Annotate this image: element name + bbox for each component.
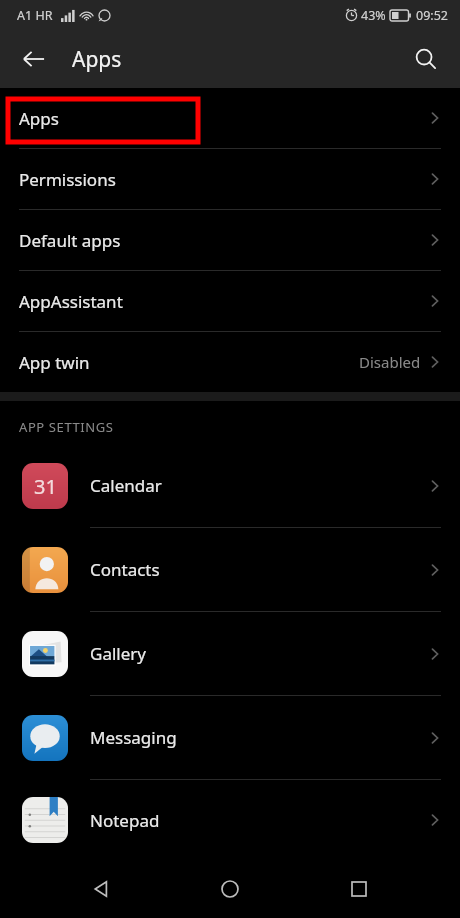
staticText: Permissions [19, 168, 116, 191]
button[interactable]: Gallery [0, 612, 460, 695]
staticText: Messaging [90, 726, 177, 749]
button[interactable]: Search [404, 37, 448, 81]
staticText: Notepad [90, 809, 160, 832]
staticText: Calendar [90, 474, 162, 497]
staticText: Contacts [90, 558, 160, 581]
button[interactable]: 31 [0, 444, 460, 527]
staticText: Default apps [19, 229, 121, 252]
button[interactable]: Contacts [0, 528, 460, 611]
staticText: App twin [19, 351, 90, 374]
staticText: Gallery [90, 642, 146, 665]
button[interactable]: AppAssistant [0, 271, 460, 331]
staticText: APP SETTINGS [19, 418, 114, 436]
button[interactable]: Recent apps [331, 861, 387, 917]
staticText: Apps [19, 107, 59, 130]
button[interactable]: Back [12, 37, 56, 81]
button[interactable]: Back [73, 861, 129, 917]
staticText: 43% [361, 7, 386, 24]
button[interactable]: Notepad [0, 780, 460, 860]
button[interactable]: Home [202, 861, 258, 917]
button[interactable]: Messaging [0, 696, 460, 779]
staticText: AppAssistant [19, 290, 123, 313]
button[interactable]: Default apps [0, 210, 460, 270]
button[interactable]: Permissions [0, 149, 460, 209]
staticText: 31 [34, 473, 57, 500]
staticText: A1 HR [17, 7, 53, 24]
staticText: Disabled [359, 352, 421, 372]
button[interactable]: Apps [0, 88, 460, 148]
button[interactable]: App twin [0, 332, 460, 392]
staticText: Apps [72, 45, 122, 74]
staticText: 09:52 [416, 7, 448, 24]
